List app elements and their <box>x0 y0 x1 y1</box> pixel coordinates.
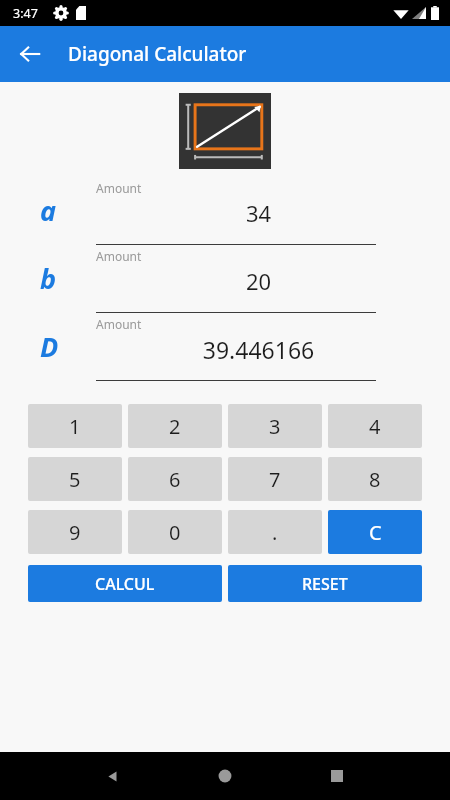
staticText: D <box>40 328 59 365</box>
staticText: 1 <box>69 413 81 440</box>
staticText: b <box>40 260 57 297</box>
button[interactable]: CALCUL <box>28 565 222 602</box>
button[interactable]: C <box>328 510 422 554</box>
staticText: Amount <box>96 248 421 264</box>
button[interactable]: 3 <box>228 404 322 448</box>
button[interactable]: 1 <box>28 404 122 448</box>
staticText: RESET <box>302 573 348 595</box>
staticText: C <box>369 519 382 546</box>
staticText: Diagonal Calculator <box>68 41 247 67</box>
button[interactable]: 4 <box>328 404 422 448</box>
staticText: . <box>272 519 278 546</box>
button[interactable]: 2 <box>128 404 222 448</box>
button[interactable]: RESET <box>228 565 422 602</box>
button[interactable]: 9 <box>28 510 122 554</box>
staticText: 34 <box>96 198 421 228</box>
staticText: 7 <box>269 466 281 493</box>
staticText: 3 <box>269 413 281 440</box>
staticText: a <box>40 192 56 229</box>
button[interactable]: 7 <box>228 457 322 501</box>
button[interactable]: 6 <box>128 457 222 501</box>
staticText: 20 <box>96 266 421 296</box>
button[interactable]: Home <box>218 769 232 783</box>
staticText: 9 <box>69 519 81 546</box>
staticText: Amount <box>96 180 421 196</box>
button[interactable]: Back <box>8 32 52 76</box>
button[interactable]: 0 <box>128 510 222 554</box>
staticText: Amount <box>96 316 421 332</box>
staticText: 39.446166 <box>96 334 421 365</box>
staticText: 2 <box>169 413 181 440</box>
staticText: 8 <box>369 466 381 493</box>
staticText: 4 <box>369 413 381 440</box>
button[interactable]: Back <box>106 769 121 784</box>
button[interactable]: . <box>228 510 322 554</box>
button[interactable]: 5 <box>28 457 122 501</box>
button[interactable]: 8 <box>328 457 422 501</box>
staticText: 6 <box>169 466 181 493</box>
staticText: CALCUL <box>95 573 155 595</box>
staticText: 5 <box>69 466 81 493</box>
staticText: 0 <box>169 519 181 546</box>
staticText: 3:47 <box>13 5 38 22</box>
